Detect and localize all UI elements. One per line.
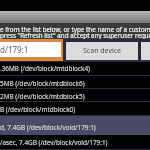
staticText: d/179:1 — [0, 44, 29, 55]
button[interactable]: 5MB (/dev/block/mtdblock6) — [0, 76, 150, 89]
staticText: 2MB (/dev/block/mtdblock5) — [0, 92, 85, 101]
button[interactable]: d/179:1 — [0, 42, 61, 57]
staticText: Scan device — [83, 46, 122, 56]
staticText: .36MB (/dev/block/mtdblock4) — [0, 64, 90, 73]
staticText: e from the list below, or type the name … — [0, 25, 150, 34]
button[interactable]: B (/dev/block/mtdblock0) — [0, 102, 150, 116]
button[interactable]: /asec, 7.4GB (/dev/block/vold/179:1) — [0, 135, 150, 150]
staticText: d, 7.4GB (/dev/block/vold/179:1) — [0, 123, 96, 132]
button[interactable]: Scan device — [66, 42, 138, 60]
staticText: B (/dev/block/mtdblock0) — [0, 105, 76, 114]
button[interactable]: .36MB (/dev/block/mtdblock4) — [0, 62, 150, 76]
staticText: /asec, 7.4GB (/dev/block/vold/179:1) — [0, 138, 108, 147]
staticText: 5MB (/dev/block/mtdblock6) — [0, 79, 85, 88]
button[interactable]: 2MB (/dev/block/mtdblock5) — [0, 89, 150, 102]
staticText: press "Refresh list" and accept any supe… — [0, 31, 150, 40]
button[interactable]: d, 7.4GB (/dev/block/vold/179:1) — [0, 116, 150, 135]
